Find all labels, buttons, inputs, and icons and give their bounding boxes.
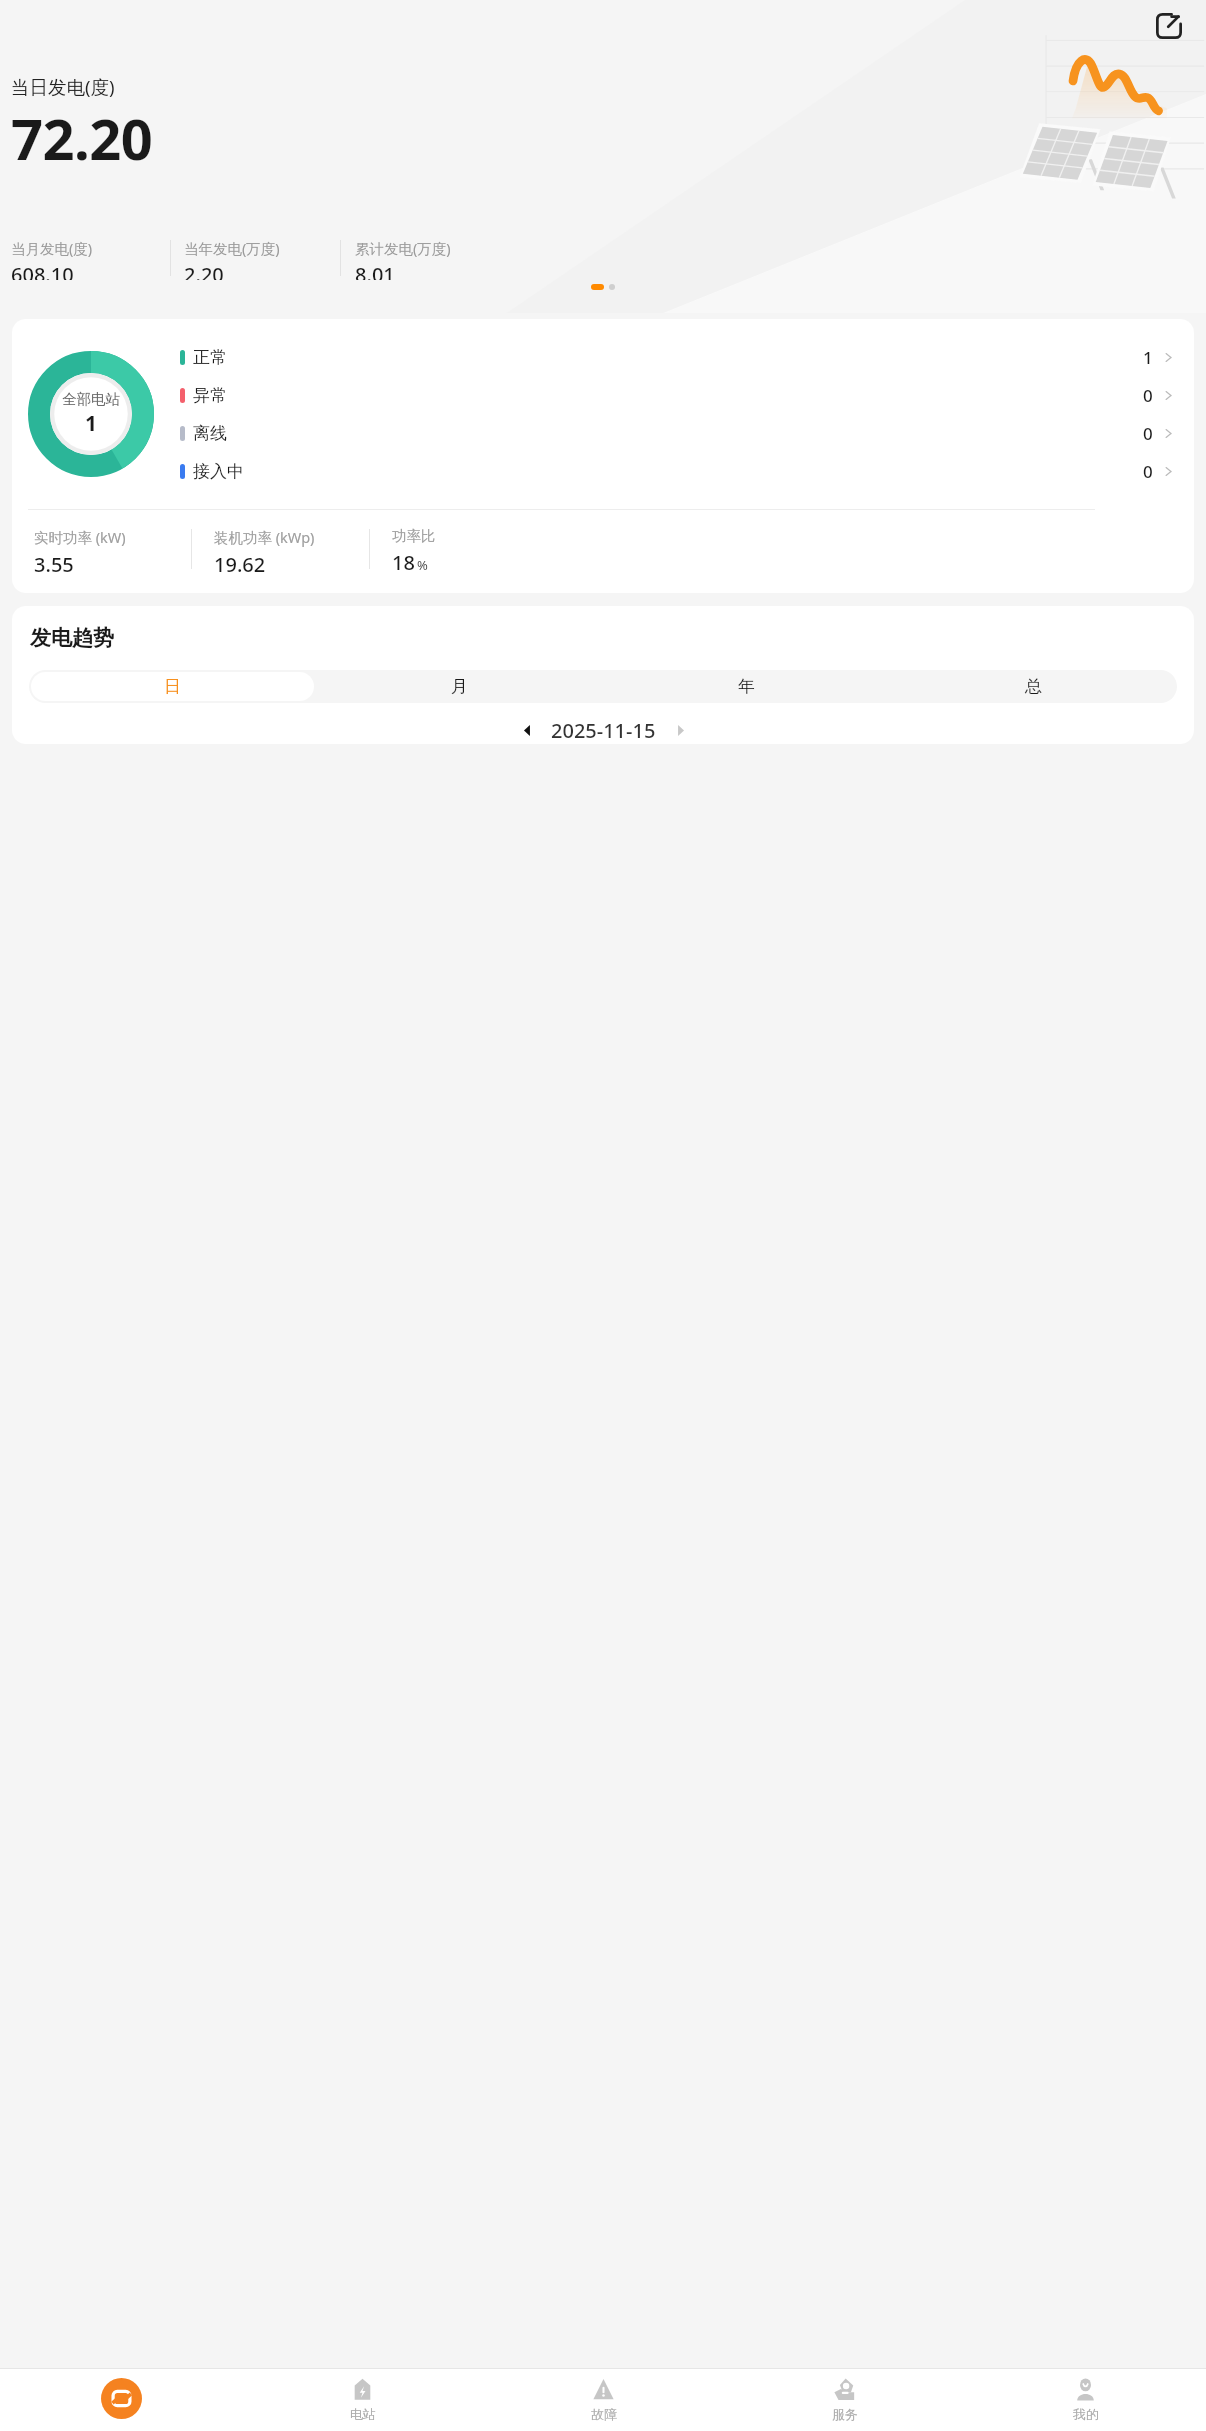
button[interactable]: 异常 [180,384,1174,407]
staticText: 月 [451,676,468,697]
staticText: 72.20 [11,100,153,176]
button[interactable]: Previous day [513,717,541,744]
staticText: 当日发电(度) [11,74,115,99]
button[interactable]: 接入中 [180,460,1174,483]
button[interactable]: Share [1146,3,1192,49]
staticText: 0 [1143,384,1153,407]
staticText: 服务 [832,2406,858,2422]
button[interactable]: 正常 [180,346,1174,369]
button[interactable]: 我的 [965,2369,1206,2431]
button[interactable]: 全部电站 [28,351,154,477]
staticText: 8.01 [355,261,395,280]
staticText: 累计发电(万度) [355,238,451,258]
button[interactable]: Home [0,2369,242,2431]
staticText: 装机功率 (kWp) [214,527,315,547]
staticText: 2.20 [184,261,224,280]
staticText: 我的 [1073,2406,1099,2422]
staticText: 1 [85,409,98,438]
staticText: 3.55 [34,551,74,578]
staticText: 年 [738,676,755,697]
staticText: 当年发电(万度) [184,238,280,258]
staticText: 电站 [350,2406,376,2422]
button[interactable]: 月 [318,672,601,701]
staticText: 全部电站 [62,390,120,408]
staticText: 1 [1143,346,1153,369]
staticText: 18 [392,549,415,576]
staticText: 0 [1143,422,1153,445]
button[interactable]: 年 [605,672,888,701]
staticText: 离线 [193,423,227,444]
button[interactable]: 服务 [724,2369,965,2431]
staticText: 故障 [591,2406,617,2422]
button[interactable]: 日 [31,672,314,701]
staticText: 实时功率 (kW) [34,527,126,547]
staticText: 正常 [193,347,227,368]
button[interactable]: 离线 [180,422,1174,445]
button[interactable]: 电站 [242,2369,483,2431]
staticText: 异常 [193,385,227,406]
staticText: 当月发电(度) [11,238,93,258]
staticText: 功率比 [392,527,436,545]
staticText: % [417,556,428,574]
staticText: 608.10 [11,261,74,280]
staticText: 19.62 [214,551,266,578]
staticText: 总 [1025,676,1042,697]
button[interactable]: 总 [892,672,1175,701]
staticText: 发电趋势 [30,625,114,651]
button[interactable]: Next day [666,717,694,744]
staticText: 接入中 [193,461,244,482]
staticText: 日 [164,676,181,697]
button[interactable]: 故障 [483,2369,724,2431]
staticText: 0 [1143,460,1153,483]
staticText: 2025-11-15 [551,717,656,744]
